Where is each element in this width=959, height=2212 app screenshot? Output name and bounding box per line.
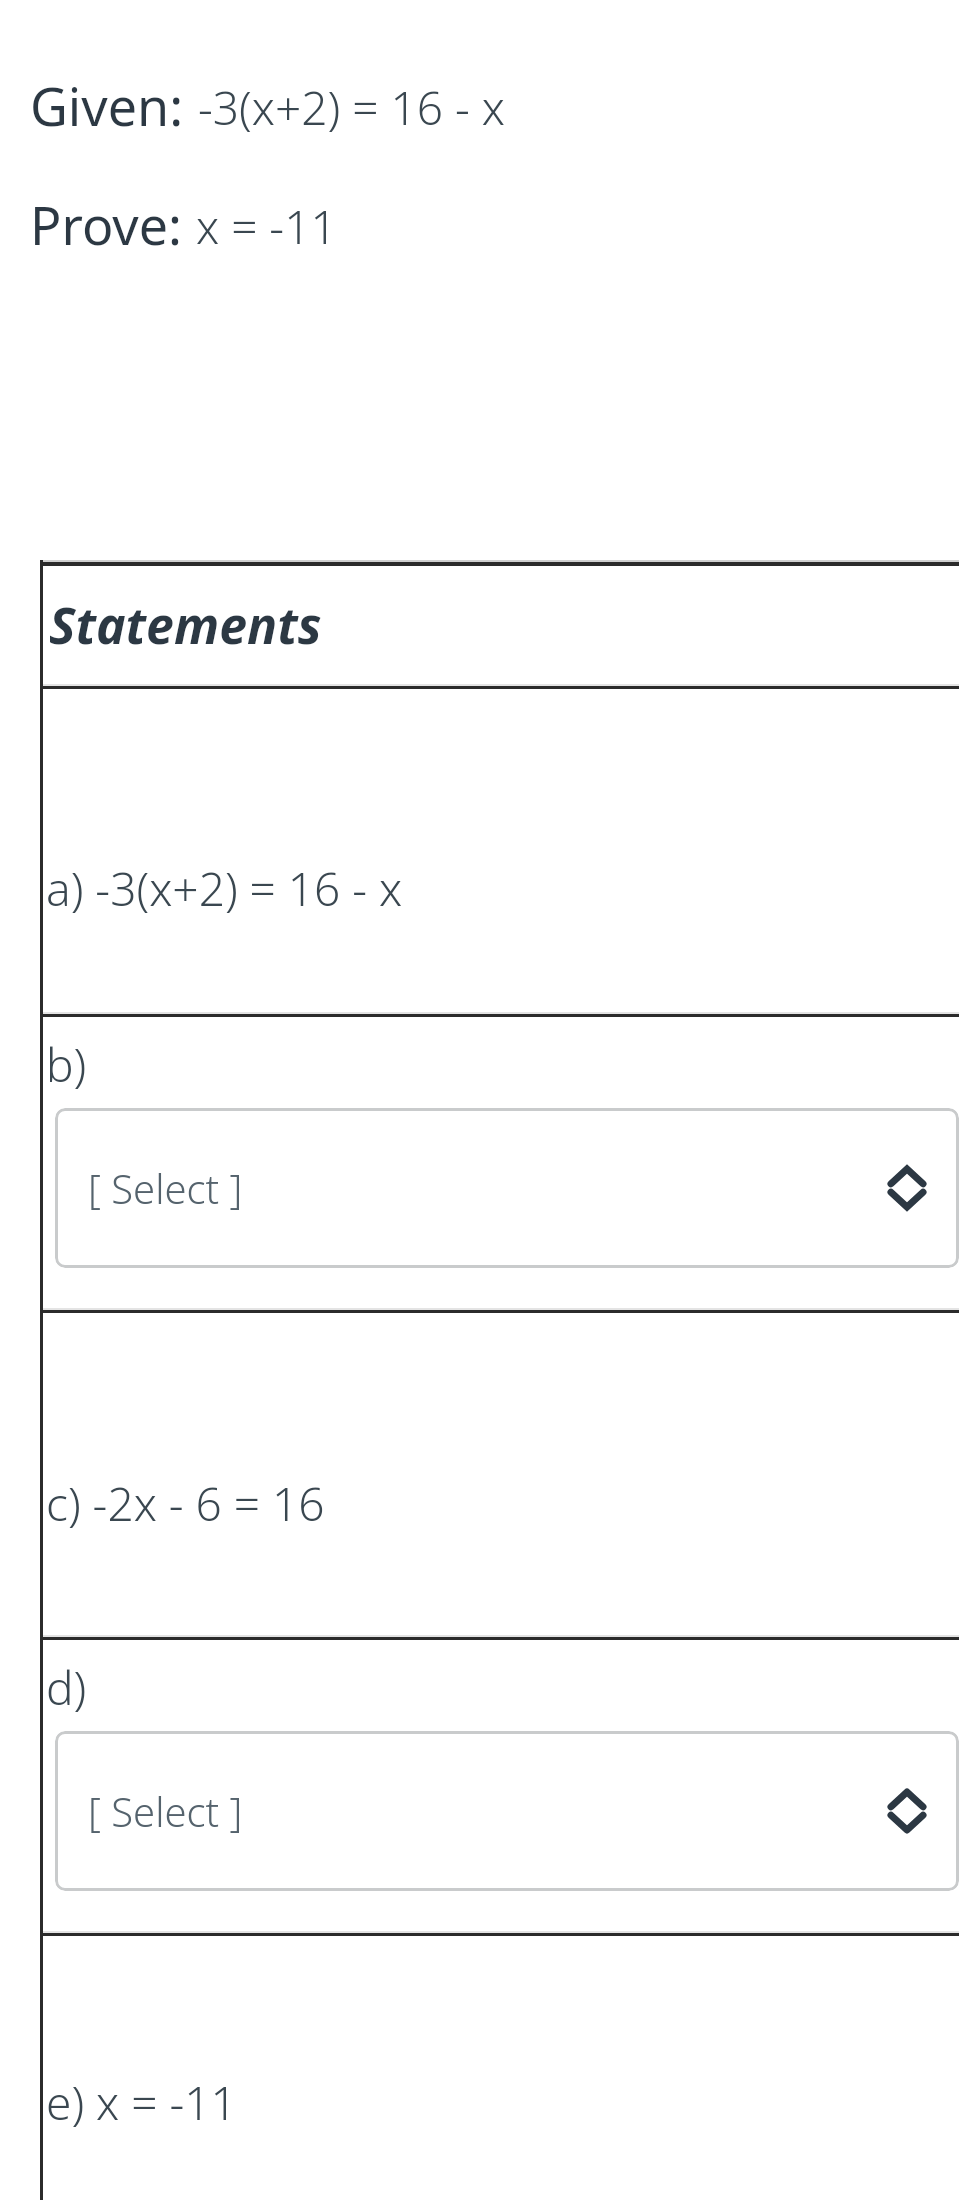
staticText: d) [46, 1656, 87, 1719]
staticText: b) [46, 1033, 87, 1096]
staticText: Statements [49, 591, 322, 659]
button[interactable]: c) -2x - 6 = 16 [43, 1313, 959, 1635]
staticText: Prove: [30, 189, 182, 260]
button[interactable]: b) [43, 1017, 959, 1308]
staticText: [ Select ] [88, 1161, 243, 1215]
staticText: [ Select ] [88, 1784, 243, 1838]
button[interactable]: [ Select ] [55, 1108, 959, 1268]
button[interactable]: Statements [43, 566, 959, 684]
staticText: x = -11 [196, 195, 337, 258]
button[interactable]: d) [43, 1640, 959, 1931]
button[interactable]: a) -3(x+2) = 16 - x [43, 689, 959, 1012]
staticText: -3(x+2) = 16 - x [198, 76, 505, 139]
staticText: Given: [30, 70, 184, 141]
button[interactable]: e) x = -11 [43, 1936, 959, 2178]
button[interactable]: [ Select ] [55, 1731, 959, 1891]
staticText: e) x = -11 [46, 2071, 237, 2134]
staticText: c) -2x - 6 = 16 [46, 1472, 325, 1535]
staticText: a) -3(x+2) = 16 - x [46, 857, 403, 920]
